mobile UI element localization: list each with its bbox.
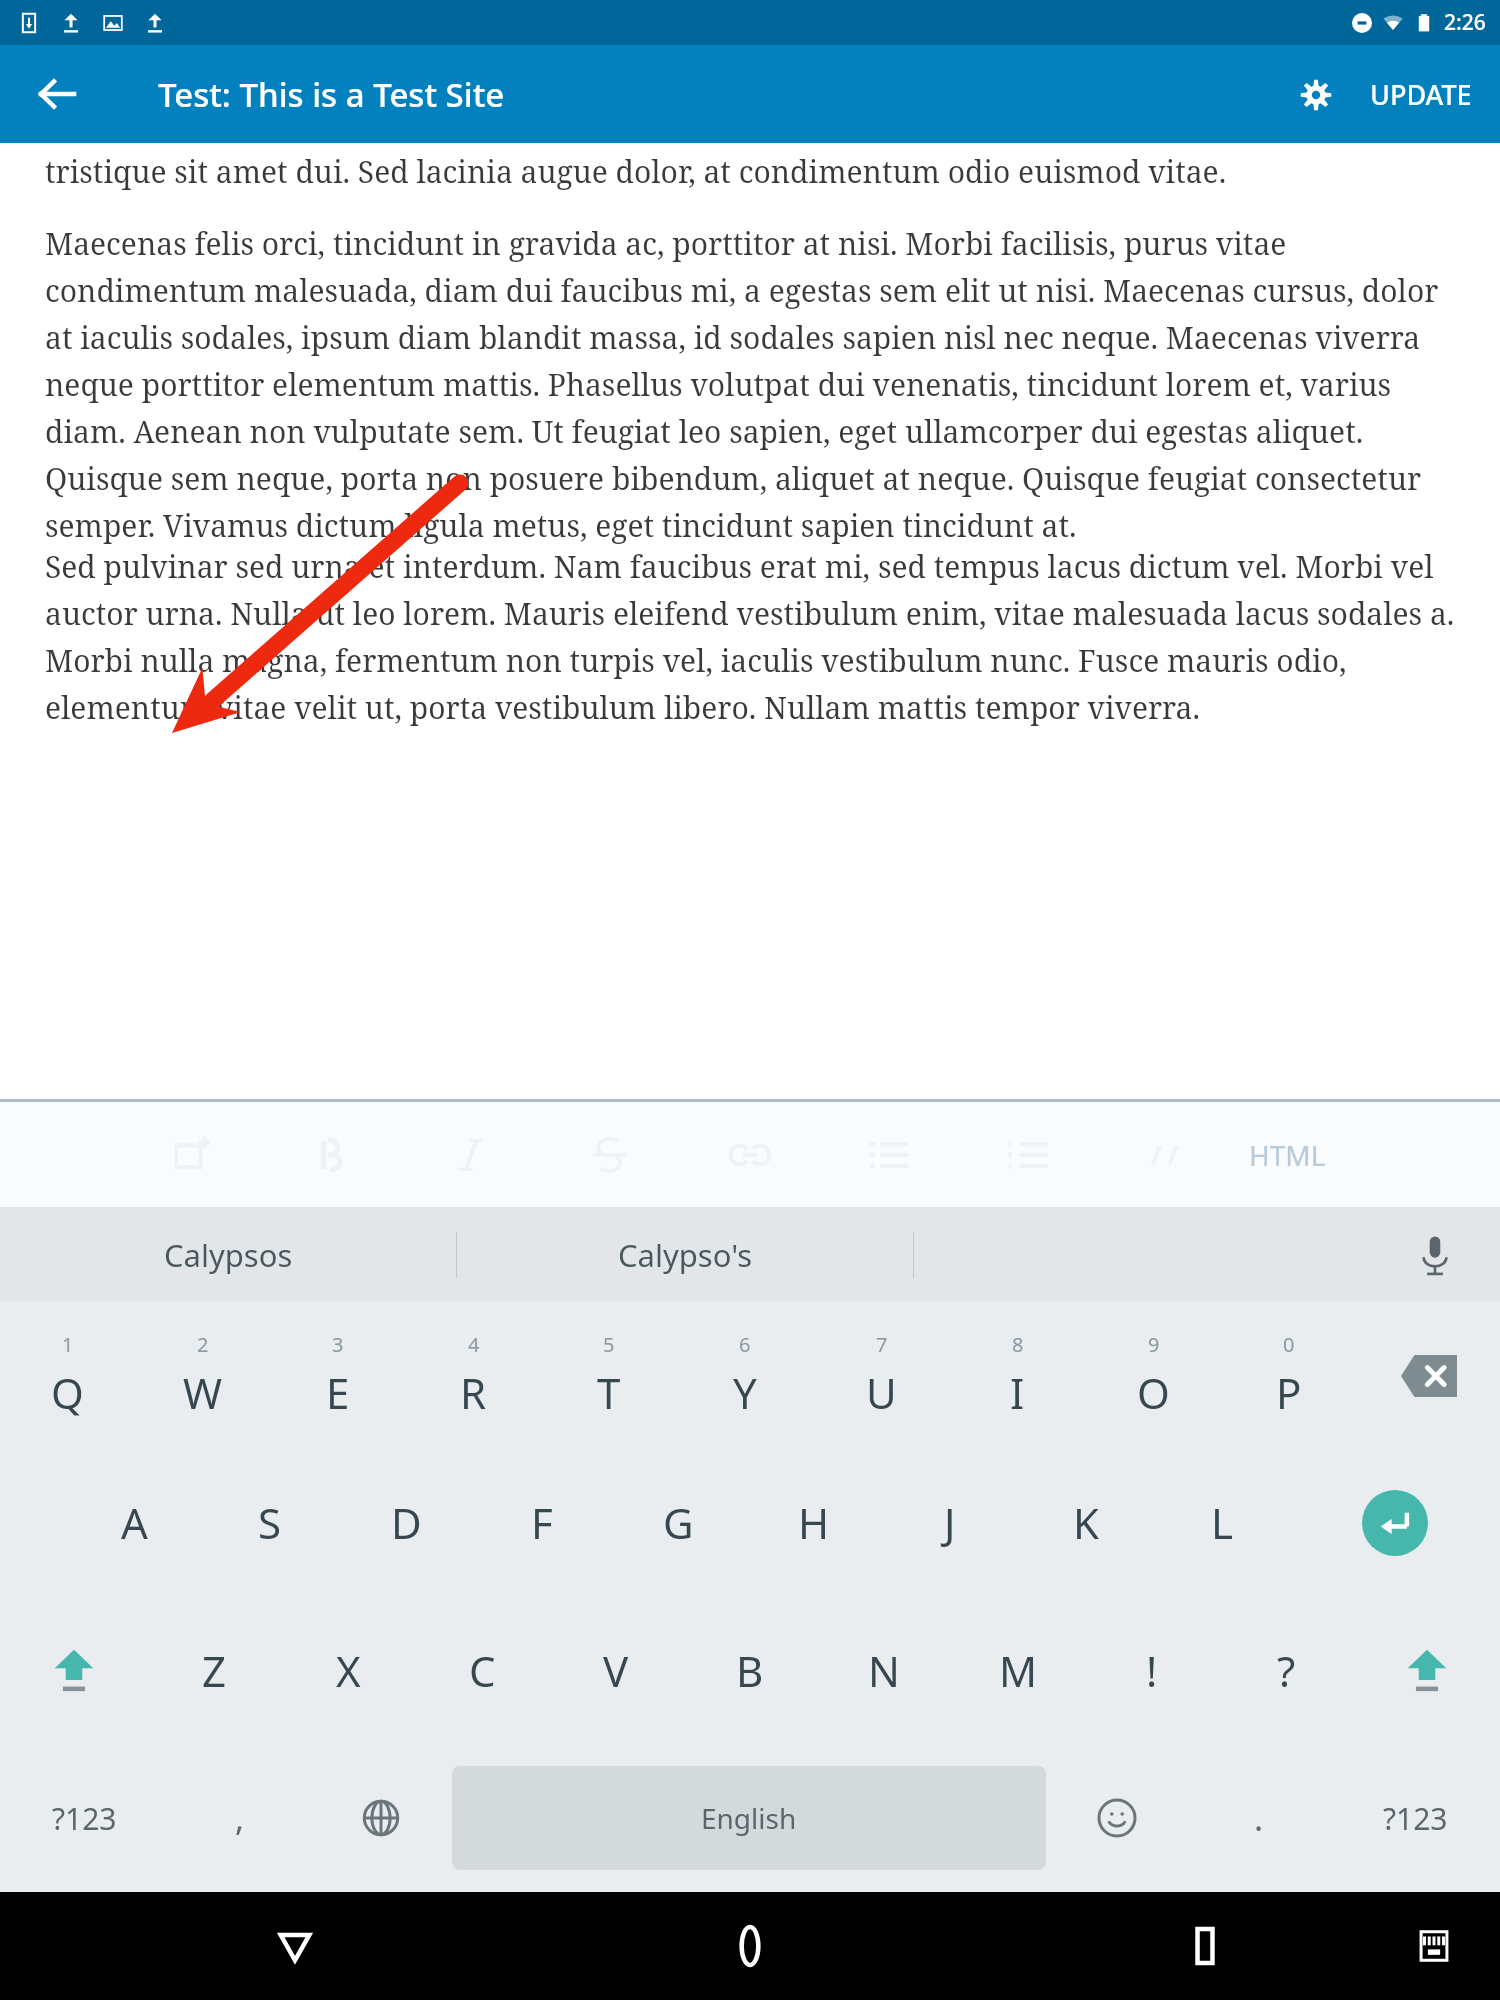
button[interactable]: Back (250, 1901, 340, 1991)
staticText: F (531, 1494, 553, 1551)
button[interactable]: 1 (0, 1302, 135, 1449)
staticText: ! (1146, 1642, 1158, 1699)
staticText: HTML (1249, 1136, 1326, 1174)
button[interactable]: English (452, 1766, 1046, 1870)
staticText: T (597, 1364, 621, 1421)
staticText: O (1137, 1364, 1170, 1421)
button[interactable]: UPDATE (1352, 58, 1490, 131)
button[interactable]: A (67, 1449, 202, 1596)
button[interactable]: , (169, 1744, 310, 1892)
staticText: English (701, 1799, 797, 1837)
button[interactable]: L (1154, 1449, 1290, 1596)
staticText: Z (202, 1642, 227, 1699)
button[interactable]: Switch keyboard (1396, 1908, 1472, 1984)
button[interactable]: F (474, 1449, 610, 1596)
button[interactable]: 4 (405, 1302, 541, 1449)
button[interactable]: X (281, 1596, 415, 1744)
button[interactable]: ! (1085, 1596, 1219, 1744)
button[interactable]: 2 (135, 1302, 270, 1449)
staticText: 1 (62, 1331, 74, 1358)
staticText: U (866, 1364, 897, 1421)
button[interactable]: 7 (813, 1302, 949, 1449)
button[interactable]: Shift (0, 1596, 147, 1744)
staticText: N (868, 1642, 900, 1699)
staticText: S (258, 1494, 282, 1551)
button[interactable]: N (817, 1596, 951, 1744)
staticText: 8 (1012, 1331, 1024, 1358)
staticText: Q (51, 1364, 84, 1421)
button[interactable]: J (882, 1449, 1018, 1596)
button[interactable]: Settings (1280, 59, 1352, 131)
staticText: V (603, 1642, 629, 1699)
button[interactable]: Emoji (1046, 1744, 1188, 1892)
button[interactable]: Calypso's (457, 1207, 913, 1302)
staticText: Sed pulvinar sed urna et interdum. Nam f… (45, 546, 1455, 728)
button[interactable]: . (1188, 1744, 1330, 1892)
button[interactable]: D (338, 1449, 474, 1596)
staticText: A (121, 1494, 148, 1551)
staticText: E (326, 1364, 350, 1421)
button[interactable]: ?123 (1330, 1744, 1500, 1892)
staticText: I (1010, 1364, 1025, 1421)
button[interactable]: 0 (1221, 1302, 1357, 1449)
button[interactable]: Recent apps (1160, 1901, 1250, 1991)
button[interactable]: Backspace (1357, 1302, 1500, 1449)
staticText: Maecenas felis orci, tincidunt in gravid… (45, 223, 1455, 546)
button[interactable]: ?123 (0, 1744, 169, 1892)
button[interactable]: 9 (1085, 1302, 1221, 1449)
staticText: P (1276, 1364, 1302, 1421)
button[interactable]: S (202, 1449, 338, 1596)
staticText: 2:26 (1444, 8, 1486, 37)
button[interactable]: Calypsos (0, 1207, 456, 1302)
button[interactable]: 3 (270, 1302, 405, 1449)
staticText: C (469, 1642, 496, 1699)
staticText: J (944, 1494, 956, 1551)
staticText: B (736, 1642, 764, 1699)
staticText: K (1073, 1494, 1099, 1551)
button[interactable]: Enter (1290, 1449, 1500, 1596)
staticText: 9 (1148, 1331, 1160, 1358)
staticText: R (460, 1364, 487, 1421)
button[interactable]: tristique sit amet dui. Sed lacinia augu… (45, 143, 1455, 1099)
staticText: Calypso's (618, 1234, 753, 1276)
staticText: ?123 (1383, 1798, 1448, 1839)
staticText: M (999, 1642, 1038, 1699)
button[interactable]: K (1018, 1449, 1154, 1596)
staticText: 3 (332, 1331, 344, 1358)
button[interactable]: M (951, 1596, 1085, 1744)
button[interactable]: V (549, 1596, 683, 1744)
staticText: 6 (739, 1331, 751, 1358)
button[interactable]: Change language (310, 1744, 452, 1892)
button[interactable]: ? (1219, 1596, 1353, 1744)
button[interactable]: Shift (1353, 1596, 1500, 1744)
button[interactable]: C (415, 1596, 549, 1744)
staticText: , (235, 1795, 245, 1841)
staticText: Y (733, 1364, 757, 1421)
button[interactable]: B (683, 1596, 817, 1744)
button[interactable]: Voice input (1370, 1207, 1500, 1302)
button[interactable]: 8 (949, 1302, 1085, 1449)
button[interactable]: Back (22, 59, 92, 129)
button[interactable]: 6 (677, 1302, 813, 1449)
staticText: . (1254, 1795, 1264, 1841)
button[interactable]: HTML (1235, 1122, 1340, 1188)
staticText: L (1211, 1494, 1234, 1551)
staticText: 4 (468, 1331, 480, 1358)
staticText: D (391, 1494, 422, 1551)
button[interactable]: H (746, 1449, 882, 1596)
button[interactable]: Z (147, 1596, 281, 1744)
staticText: G (663, 1494, 694, 1551)
button[interactable]: 5 (541, 1302, 677, 1449)
button[interactable]: Home (705, 1901, 795, 1991)
staticText: ? (1277, 1642, 1296, 1699)
button[interactable]: G (610, 1449, 746, 1596)
staticText: ?123 (52, 1798, 117, 1839)
